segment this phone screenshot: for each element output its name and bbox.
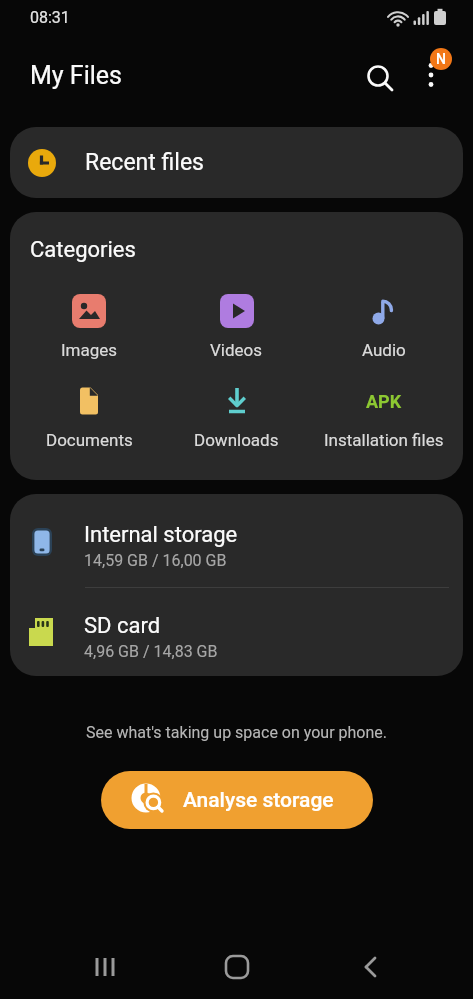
staticText: N	[436, 51, 446, 67]
button[interactable]: Images	[15, 294, 163, 360]
button[interactable]: Audio	[310, 294, 457, 360]
staticText: Videos	[210, 340, 263, 360]
staticText: Internal storage	[84, 522, 238, 548]
staticText: Images	[61, 340, 118, 360]
staticText: Recent files	[85, 149, 204, 176]
button[interactable]: Downloads	[163, 384, 310, 450]
staticText: Categories	[30, 237, 136, 263]
button[interactable]	[346, 943, 394, 991]
staticText: My Files	[30, 61, 122, 90]
button[interactable]: SD card	[10, 588, 463, 676]
button[interactable]: Analyse storage	[101, 771, 373, 829]
staticText: Analyse storage	[183, 788, 334, 813]
staticText: Installation files	[324, 430, 444, 450]
button[interactable]	[81, 943, 129, 991]
button[interactable]: Documents	[15, 384, 163, 450]
button[interactable]: APK	[310, 384, 457, 450]
staticText: Downloads	[194, 430, 279, 450]
staticText: See what's taking up space on your phone…	[0, 723, 473, 742]
button[interactable]	[413, 58, 449, 112]
staticText: 14,59 GB / 16,00 GB	[84, 551, 227, 570]
staticText: Audio	[362, 340, 406, 360]
staticText: APK	[366, 391, 402, 412]
button[interactable]	[213, 943, 261, 991]
staticText: 4,96 GB / 14,83 GB	[84, 642, 218, 661]
staticText: SD card	[84, 613, 161, 639]
button[interactable]: Videos	[163, 294, 310, 360]
button[interactable]: Recent files	[10, 127, 463, 198]
button[interactable]	[357, 53, 401, 97]
staticText: Documents	[46, 430, 133, 450]
button[interactable]: Internal storage	[10, 496, 463, 587]
staticText: 08:31	[30, 8, 70, 27]
